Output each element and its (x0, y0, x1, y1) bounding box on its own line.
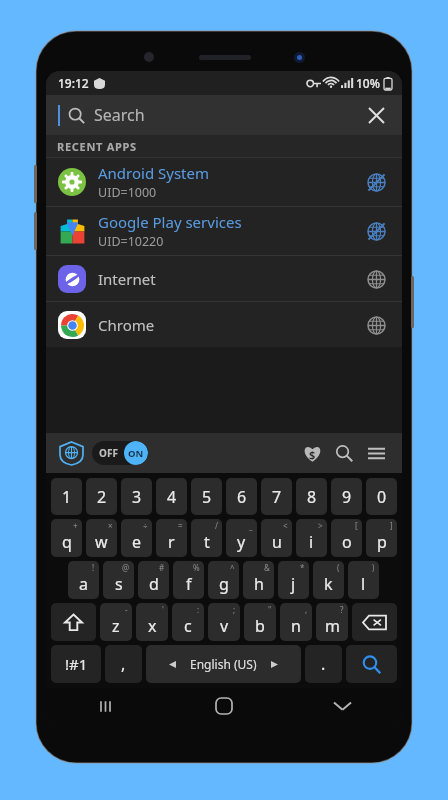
button[interactable]: > (296, 519, 327, 557)
button[interactable]: . (305, 645, 342, 683)
button[interactable]: 3 (121, 478, 152, 515)
staticText: 6 (237, 486, 247, 508)
staticText: % (193, 562, 200, 573)
staticText: f (186, 573, 192, 595)
button[interactable]: # (138, 561, 169, 599)
button[interactable]: Home (164, 688, 283, 724)
staticText: ! (92, 562, 95, 573)
staticText: ] (390, 520, 393, 531)
button[interactable]: & (243, 561, 274, 599)
button[interactable]: Internet allowed (361, 264, 391, 294)
staticText: s (115, 573, 123, 595)
button[interactable]: 0 (366, 478, 397, 515)
button[interactable]: 7 (261, 478, 292, 515)
staticText: e (132, 531, 142, 553)
staticText: [ (355, 520, 358, 531)
button[interactable]: Clear search (362, 101, 390, 129)
staticText: k (324, 573, 333, 595)
staticText: x (148, 615, 157, 637)
button[interactable]: Shift (51, 603, 96, 641)
staticText: 7 (272, 486, 282, 508)
button[interactable]: 5 (191, 478, 222, 515)
button[interactable]: = (156, 519, 187, 557)
staticText: > (318, 520, 323, 531)
staticText: ? (340, 604, 344, 615)
button[interactable]: Chrome (46, 302, 402, 347)
staticText: ' (162, 604, 164, 615)
staticText: Search (94, 104, 145, 126)
button[interactable]: 1 (51, 478, 82, 515)
button[interactable]: ^ (208, 561, 239, 599)
staticText: v (220, 615, 229, 637)
button[interactable]: Menu (360, 437, 392, 469)
button[interactable]: @ (103, 561, 134, 599)
button[interactable]: Search (46, 95, 402, 135)
button[interactable]: × (86, 519, 117, 557)
button[interactable]: _ (226, 519, 257, 557)
button[interactable]: Internet allowed (361, 310, 391, 340)
button[interactable]: / (191, 519, 222, 557)
button[interactable]: English (US) (146, 645, 301, 683)
staticText: q (62, 531, 72, 553)
staticText: ; (233, 604, 236, 615)
button[interactable]: Symbols (51, 645, 101, 683)
staticText: ÷ (143, 520, 148, 531)
staticText: a (79, 573, 88, 595)
button[interactable]: * (278, 561, 309, 599)
button[interactable]: Internet (46, 256, 402, 301)
staticText: × (108, 520, 113, 531)
staticText: RECENT APPS (57, 139, 137, 154)
button[interactable]: Firewall status (56, 438, 86, 468)
button[interactable]: Back (283, 688, 402, 724)
button[interactable]: < (261, 519, 292, 557)
button[interactable]: , (280, 603, 312, 641)
button[interactable]: Android System (46, 158, 402, 206)
staticText: UID=10220 (98, 233, 164, 250)
button[interactable]: ! (68, 561, 99, 599)
staticText: English (US) (190, 656, 257, 672)
staticText: . (321, 653, 326, 675)
staticText: _ (249, 520, 253, 531)
button[interactable]: Internet blocked (361, 167, 391, 197)
button[interactable]: ) (348, 561, 379, 599)
button[interactable]: 9 (331, 478, 362, 515)
staticText: 2 (97, 486, 107, 508)
button[interactable]: ] (366, 519, 397, 557)
button[interactable]: % (173, 561, 204, 599)
button[interactable]: + (51, 519, 82, 557)
button[interactable]: [ (331, 519, 362, 557)
button[interactable]: ; (208, 603, 240, 641)
button[interactable]: ÷ (121, 519, 152, 557)
button[interactable]: Search (346, 645, 397, 683)
button[interactable]: 4 (156, 478, 187, 515)
staticText: ) (372, 562, 375, 573)
staticText: ( (337, 562, 340, 573)
staticText: $ (309, 447, 316, 462)
button[interactable]: Backspace (352, 603, 397, 641)
button[interactable]: ? (316, 603, 348, 641)
button[interactable]: Recents (46, 688, 164, 724)
staticText: 5 (202, 486, 212, 508)
button[interactable]: OFF (92, 441, 148, 465)
button[interactable]: 8 (296, 478, 327, 515)
staticText: + (73, 520, 78, 531)
button[interactable]: 2 (86, 478, 117, 515)
button[interactable]: 6 (226, 478, 257, 515)
button[interactable]: Donate (296, 437, 328, 469)
button[interactable]: ( (313, 561, 344, 599)
button[interactable]: , (105, 645, 142, 683)
button[interactable]: : (172, 603, 204, 641)
button[interactable]: " (244, 603, 276, 641)
staticText: Android System (98, 163, 210, 183)
staticText: n (291, 615, 301, 637)
button[interactable]: Search (328, 437, 360, 469)
staticText: Internet (98, 269, 156, 289)
button[interactable]: Google Play services (46, 207, 402, 255)
staticText: , (121, 653, 126, 675)
staticText: p (377, 531, 387, 553)
button[interactable]: ' (136, 603, 168, 641)
button[interactable]: - (100, 603, 132, 641)
button[interactable]: Internet blocked (361, 216, 391, 246)
staticText: r (168, 531, 175, 553)
staticText: l (361, 573, 366, 595)
